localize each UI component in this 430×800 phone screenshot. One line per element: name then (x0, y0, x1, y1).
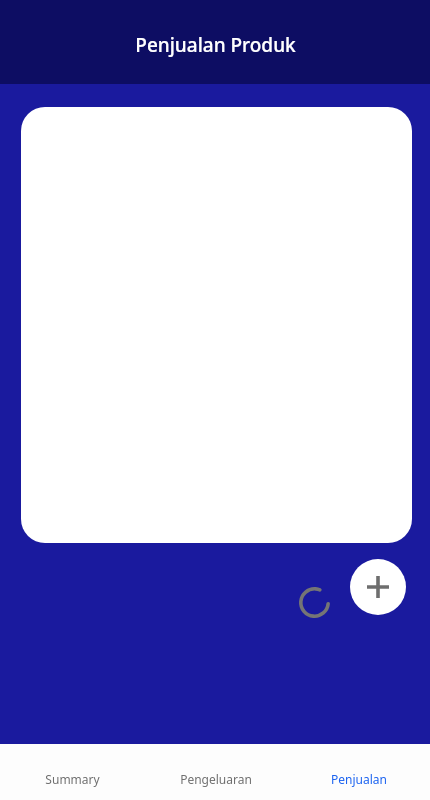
button[interactable] (21, 107, 412, 543)
button[interactable]: Pengeluaran (144, 744, 287, 800)
button[interactable]: Summary (0, 744, 144, 800)
staticText: Penjualan Produk (135, 32, 296, 58)
button[interactable]: Add (350, 559, 406, 615)
staticText: Pengeluaran (180, 771, 252, 787)
staticText: Penjualan (331, 771, 387, 787)
button[interactable]: Penjualan (287, 744, 430, 800)
staticText: Summary (45, 771, 100, 787)
other: Loading (298, 586, 330, 618)
